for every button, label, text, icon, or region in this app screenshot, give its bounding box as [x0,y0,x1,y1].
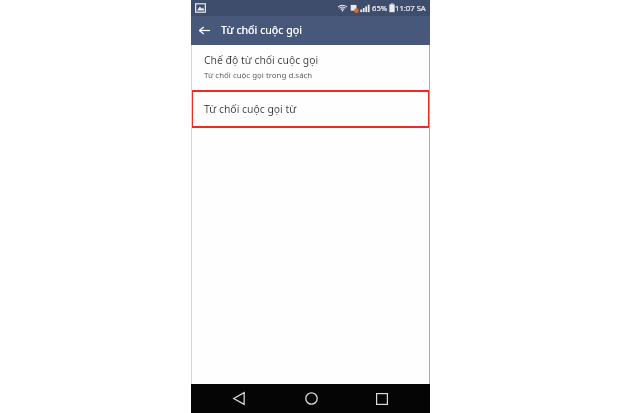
staticText: 11:07 SA [395,3,426,13]
staticText: Từ chối cuộc gọi trong d.sách [204,70,313,81]
staticText: 65% [372,3,388,13]
button[interactable]: Recent apps [358,384,406,413]
staticText: Chế độ từ chối cuộc gọi [204,53,319,67]
button[interactable]: Home [287,384,335,413]
button[interactable]: Back [191,16,218,45]
button[interactable]: Từ chối cuộc gọi từ [191,90,430,128]
button[interactable]: Chế độ từ chối cuộc gọi [191,45,430,90]
staticText: Từ chối cuộc gọi từ [204,102,297,116]
button[interactable]: Back [215,384,263,413]
staticText: Từ chối cuộc gọi [221,23,303,38]
